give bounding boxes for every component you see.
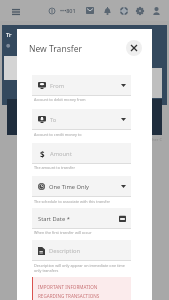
button[interactable]: One Time Only	[32, 176, 131, 197]
staticText: Tr	[6, 31, 12, 39]
staticText: One Time Only	[49, 183, 90, 191]
button[interactable]: Language	[117, 4, 130, 17]
button[interactable]: Messages	[83, 4, 96, 17]
button[interactable]: Settings	[133, 4, 146, 17]
button[interactable]: Menu	[8, 4, 23, 19]
staticText: Description	[49, 247, 80, 255]
button[interactable]: $	[32, 143, 131, 164]
staticText: IMPORTANT INFORMATION	[38, 284, 98, 290]
staticText: Account to credit money to	[34, 132, 82, 137]
staticText: Amount	[50, 150, 72, 158]
staticText: REGARDING TRANSACTIONS	[38, 293, 100, 299]
button[interactable]: Start Date *	[32, 208, 131, 229]
button[interactable]: From	[32, 75, 131, 96]
staticText: ●	[6, 42, 11, 48]
staticText: her C	[152, 137, 162, 142]
button[interactable]: Profile	[150, 4, 163, 17]
button[interactable]: To	[32, 109, 131, 130]
staticText: The schedule to associate with this tran…	[34, 199, 111, 204]
button[interactable]: •••801	[49, 7, 76, 14]
button[interactable]: Description	[32, 240, 131, 261]
button[interactable]: Notifications	[101, 4, 114, 17]
staticText: Start Date *	[38, 215, 70, 223]
staticText: From	[50, 82, 65, 90]
button[interactable]: Close	[126, 40, 142, 56]
staticText: To	[50, 116, 57, 124]
staticText: The amount to transfer	[34, 165, 75, 170]
staticText: •••801	[60, 7, 76, 14]
staticText: When the first transfer will occur	[34, 230, 92, 235]
staticText: $	[40, 149, 45, 158]
staticText: Account to debit money from	[34, 97, 86, 102]
staticText: Description will only appear on immediat…	[34, 263, 131, 273]
staticText: New Transfer	[29, 43, 82, 55]
